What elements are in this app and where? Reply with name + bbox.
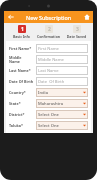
button[interactable]: 2 — [35, 25, 62, 39]
staticText: Basic Info — [8, 34, 35, 39]
button[interactable]: First Name* — [9, 44, 88, 53]
staticText: Middle Name — [38, 57, 64, 63]
staticText: India — [38, 90, 49, 96]
button[interactable]: Date Of Birth — [9, 77, 88, 86]
staticText: Last Name — [38, 68, 59, 74]
staticText: First Name — [38, 46, 59, 52]
staticText: Date Saved — [63, 34, 90, 39]
staticText: Select One — [38, 112, 59, 118]
button[interactable]: Taluka* — [9, 121, 88, 130]
button[interactable]: 3 — [63, 25, 90, 39]
staticText: Date Of Birth — [38, 79, 65, 85]
staticText: Middle Name — [9, 55, 22, 64]
staticText: Confirmation — [35, 34, 62, 39]
staticText: Taluka* — [9, 123, 24, 128]
button[interactable]: 1 — [8, 25, 35, 39]
button[interactable]: District* — [9, 110, 88, 119]
button[interactable]: Middle Name — [9, 55, 88, 64]
staticText: Country* — [9, 90, 26, 95]
staticText: New Subscription — [26, 14, 72, 21]
staticText: Select One — [38, 123, 59, 129]
staticText: Maharashtra — [38, 101, 64, 107]
button[interactable]: Last Name* — [9, 66, 88, 75]
button[interactable]: Home — [80, 11, 93, 23]
button[interactable]: Back — [4, 11, 17, 23]
staticText: District* — [9, 112, 25, 117]
staticText: 3 — [76, 26, 79, 33]
staticText: 2 — [48, 26, 51, 33]
button[interactable]: State* — [9, 99, 88, 108]
staticText: State* — [9, 101, 21, 106]
staticText: Date Of Birth — [9, 79, 34, 84]
button[interactable]: Country* — [9, 88, 88, 97]
staticText: 1 — [21, 26, 24, 33]
staticText: Last Name* — [9, 68, 31, 73]
staticText: First Name* — [9, 46, 32, 51]
